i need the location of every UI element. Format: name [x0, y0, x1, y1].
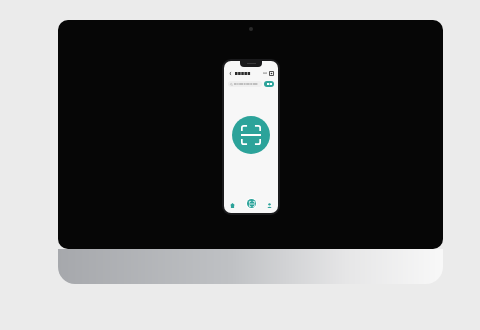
button[interactable]	[264, 81, 274, 87]
button[interactable]	[228, 81, 262, 87]
button[interactable]: Home	[229, 202, 236, 209]
button[interactable]: Back	[228, 71, 233, 76]
button[interactable]: Menu	[269, 71, 274, 76]
button[interactable]: Scan	[232, 116, 270, 154]
button[interactable]: Profile	[266, 202, 273, 209]
button[interactable]: More	[263, 71, 267, 75]
button[interactable]: Scan code	[247, 199, 256, 208]
